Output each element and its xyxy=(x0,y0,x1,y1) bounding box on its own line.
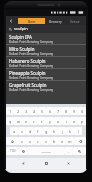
staticText: n xyxy=(61,139,64,144)
button[interactable]: ?123 xyxy=(6,147,19,155)
button[interactable]: g xyxy=(42,127,50,135)
staticText: 0 xyxy=(81,109,84,114)
button[interactable]: p xyxy=(78,117,86,125)
button[interactable]: Shift xyxy=(6,137,18,145)
staticText: Habanero Sculpin xyxy=(9,58,46,64)
staticText: 7 xyxy=(57,109,60,114)
staticText: u xyxy=(57,119,60,124)
button[interactable]: y xyxy=(46,117,54,125)
button[interactable]: Habanero Sculpin xyxy=(6,57,86,68)
button[interactable]: q xyxy=(6,117,14,125)
staticText: Ballast Point Brewing Company xyxy=(9,52,54,56)
staticText: m xyxy=(68,139,72,144)
button[interactable]: Brewery xyxy=(45,16,65,25)
staticText: p xyxy=(81,119,84,124)
button[interactable]: b xyxy=(50,137,58,145)
staticText: 5 xyxy=(41,109,44,114)
staticText: 6 xyxy=(49,109,52,114)
button[interactable]: Grapefruit Sculpin xyxy=(6,81,86,92)
button[interactable]: t xyxy=(38,117,46,125)
staticText: b xyxy=(53,139,56,144)
staticText: x xyxy=(29,139,32,144)
staticText: Sculpin IPA xyxy=(9,34,32,40)
button[interactable]: 6 xyxy=(46,107,54,115)
staticText: h xyxy=(53,129,56,134)
staticText: Pineapple Sculpin xyxy=(9,70,46,76)
button[interactable]: Mito Sculpin xyxy=(6,45,86,56)
button[interactable]: 4 xyxy=(30,107,38,115)
button[interactable]: Search xyxy=(73,147,86,155)
button[interactable]: a xyxy=(10,127,18,135)
button[interactable]: 7 xyxy=(54,107,62,115)
staticText: Brewery xyxy=(49,19,62,23)
staticText: 3 xyxy=(25,109,28,114)
button[interactable]: . xyxy=(65,147,73,155)
staticText: 8 xyxy=(65,109,68,114)
button[interactable]: 5 xyxy=(38,107,46,115)
staticText: z xyxy=(21,139,23,144)
staticText: q xyxy=(9,119,12,124)
button[interactable]: s xyxy=(18,127,26,135)
staticText: sculpin xyxy=(14,26,28,32)
staticText: Beer xyxy=(28,19,36,24)
button[interactable]: r xyxy=(30,117,38,125)
button[interactable]: j xyxy=(58,127,66,135)
button[interactable]: f xyxy=(34,127,42,135)
button[interactable]: m xyxy=(66,137,74,145)
staticText: o xyxy=(73,119,76,124)
button[interactable]: o xyxy=(70,117,78,125)
staticText: 9 xyxy=(73,109,76,114)
button[interactable]: w xyxy=(14,117,22,125)
button[interactable]: v xyxy=(42,137,50,145)
button[interactable]: n xyxy=(58,137,66,145)
button[interactable]: 3 xyxy=(22,107,30,115)
button[interactable]: Recents xyxy=(64,159,73,168)
button[interactable]: Sculpin IPA xyxy=(6,33,86,44)
staticText: f xyxy=(37,129,39,134)
staticText: r xyxy=(33,119,35,124)
button[interactable]: i xyxy=(62,117,70,125)
button[interactable]: 1 xyxy=(6,107,14,115)
button[interactable]: x xyxy=(26,137,34,145)
staticText: s xyxy=(21,129,23,134)
button[interactable]: h xyxy=(50,127,58,135)
staticText: e xyxy=(25,119,28,124)
staticText: c xyxy=(37,139,39,144)
staticText: g xyxy=(45,129,48,134)
button[interactable]: d xyxy=(26,127,34,135)
button[interactable]: 0 xyxy=(78,107,86,115)
staticText: k xyxy=(69,129,72,134)
button[interactable]: c xyxy=(34,137,42,145)
staticText: Mito Sculpin xyxy=(9,46,35,52)
button[interactable]: Emoji xyxy=(19,147,27,155)
staticText: ?123 xyxy=(10,149,16,153)
button[interactable]: 2 xyxy=(14,107,22,115)
button[interactable]: Space xyxy=(27,147,65,155)
button[interactable]: 9 xyxy=(70,107,78,115)
button[interactable]: Beer xyxy=(18,18,45,24)
button[interactable]: 8 xyxy=(62,107,70,115)
staticText: . xyxy=(68,149,70,154)
staticText: d xyxy=(29,129,32,134)
button[interactable]: Pineapple Sculpin xyxy=(6,69,86,80)
button[interactable]: l xyxy=(74,127,82,135)
button[interactable]: Backspace xyxy=(74,137,86,145)
button[interactable]: Venue xyxy=(65,16,85,25)
button[interactable]: k xyxy=(66,127,74,135)
staticText: 2 xyxy=(17,109,20,114)
button[interactable]: Back xyxy=(19,159,28,168)
staticText: a xyxy=(13,129,16,134)
button[interactable]: e xyxy=(22,117,30,125)
staticText: i xyxy=(66,119,67,124)
staticText: j xyxy=(62,129,63,134)
button[interactable]: z xyxy=(18,137,26,145)
staticText: Ballast Point Brewing Company xyxy=(9,88,54,92)
staticText: Grapefruit Sculpin xyxy=(9,82,47,88)
staticText: Ballast Point Brewing Company xyxy=(9,40,54,44)
button[interactable]: u xyxy=(54,117,62,125)
staticText: l xyxy=(78,129,79,134)
button[interactable]: Back xyxy=(6,16,16,25)
staticText: 1 xyxy=(9,109,12,114)
button[interactable]: Home xyxy=(42,159,51,168)
staticText: Ballast Point Brewing Company xyxy=(9,64,54,68)
